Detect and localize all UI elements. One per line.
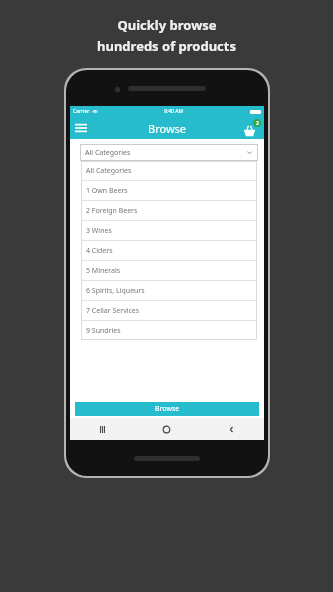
button[interactable]: 2 Foreign Beers	[81, 201, 257, 220]
button[interactable]: Recents	[70, 418, 134, 440]
button[interactable]: 9 Sundries	[81, 321, 257, 340]
button[interactable]: All Categories	[80, 144, 258, 161]
staticText: Carrier	[73, 108, 90, 115]
button[interactable]: Browse	[75, 402, 259, 416]
staticText: 9 Sundries	[86, 326, 121, 336]
button[interactable]: 6 Spirits, Liqueurs	[81, 281, 257, 300]
staticText: 4 Ciders	[86, 246, 113, 256]
button[interactable]: 4 Ciders	[81, 241, 257, 260]
staticText: 9:40 AM	[164, 108, 183, 115]
button[interactable]: 1 Own Beers	[81, 181, 257, 200]
button[interactable]: Home	[134, 418, 199, 440]
staticText: 2	[256, 120, 259, 127]
staticText: Quickly browse	[117, 16, 217, 34]
staticText: All Categories	[85, 148, 131, 158]
button[interactable]: 7 Cellar Services	[81, 301, 257, 320]
staticText: Browse	[155, 404, 180, 414]
button[interactable]: Back	[199, 418, 264, 440]
staticText: 6 Spirits, Liqueurs	[86, 286, 145, 296]
staticText: 1 Own Beers	[86, 186, 128, 196]
staticText: 5 Minerals	[86, 266, 121, 276]
staticText: 7 Cellar Services	[86, 306, 140, 316]
button[interactable]: 5 Minerals	[81, 261, 257, 280]
button[interactable]: Menu	[73, 120, 89, 136]
staticText: hundreds of products	[97, 37, 236, 55]
button[interactable]: 3 Wines	[81, 221, 257, 240]
staticText: All Categories	[86, 166, 132, 176]
staticText: Browse	[148, 121, 187, 136]
button[interactable]: Basket	[243, 119, 261, 137]
staticText: 2 Foreign Beers	[86, 206, 138, 216]
button[interactable]: All Categories	[81, 161, 257, 180]
staticText: 3 Wines	[86, 226, 112, 236]
